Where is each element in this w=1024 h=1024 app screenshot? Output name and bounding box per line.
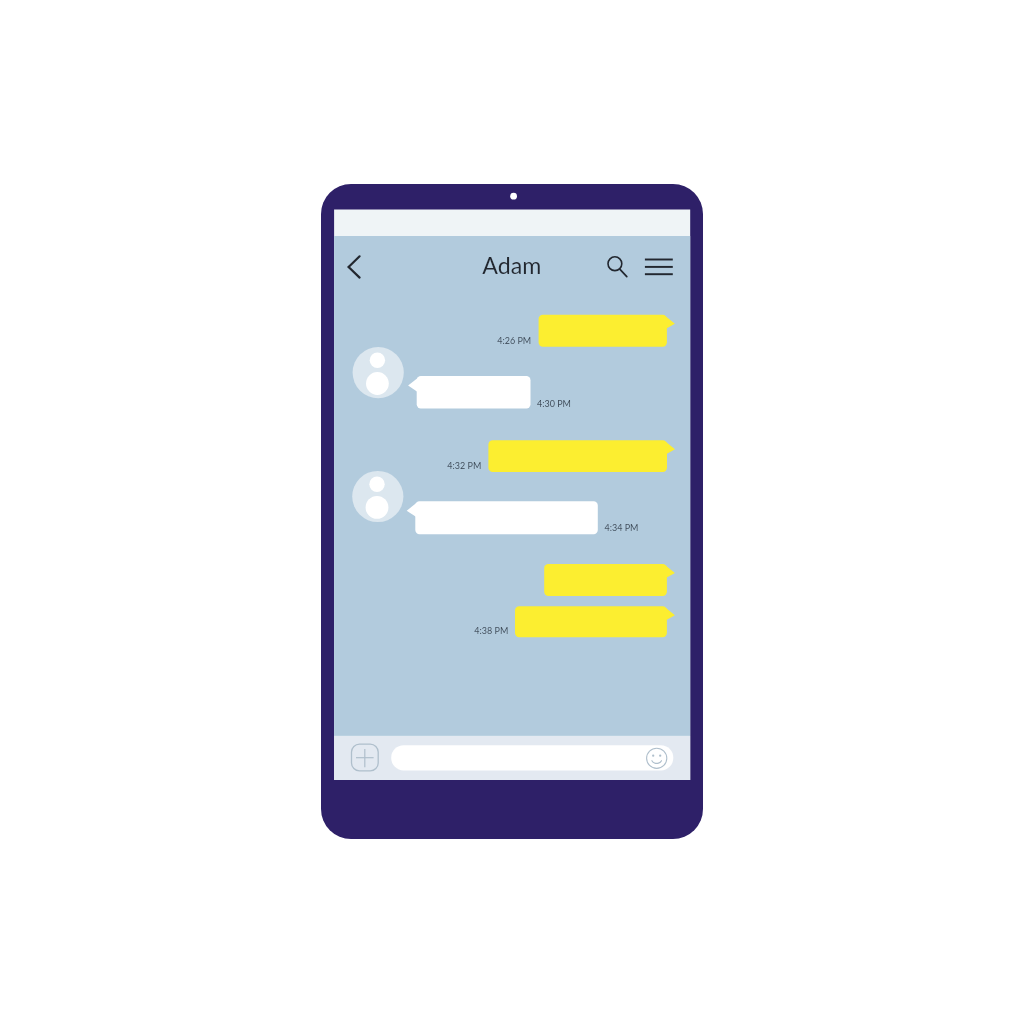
button[interactable]: Sent message	[531, 315, 675, 347]
button[interactable]: Adam — conversation title	[334, 241, 602, 291]
button[interactable]: Add attachment	[352, 744, 379, 771]
button[interactable]: Type a message	[391, 745, 641, 770]
button[interactable]: Sent message	[507, 606, 675, 637]
button[interactable]: Insert emoji	[645, 747, 669, 771]
button[interactable]: Search	[601, 250, 630, 279]
button[interactable]: Sent message	[536, 564, 675, 596]
button[interactable]: Back	[345, 251, 375, 283]
button[interactable]: Received message	[409, 376, 539, 408]
button[interactable]: Menu	[641, 252, 677, 280]
button[interactable]: Received message	[407, 501, 606, 534]
button[interactable]: Sent message	[480, 440, 675, 472]
